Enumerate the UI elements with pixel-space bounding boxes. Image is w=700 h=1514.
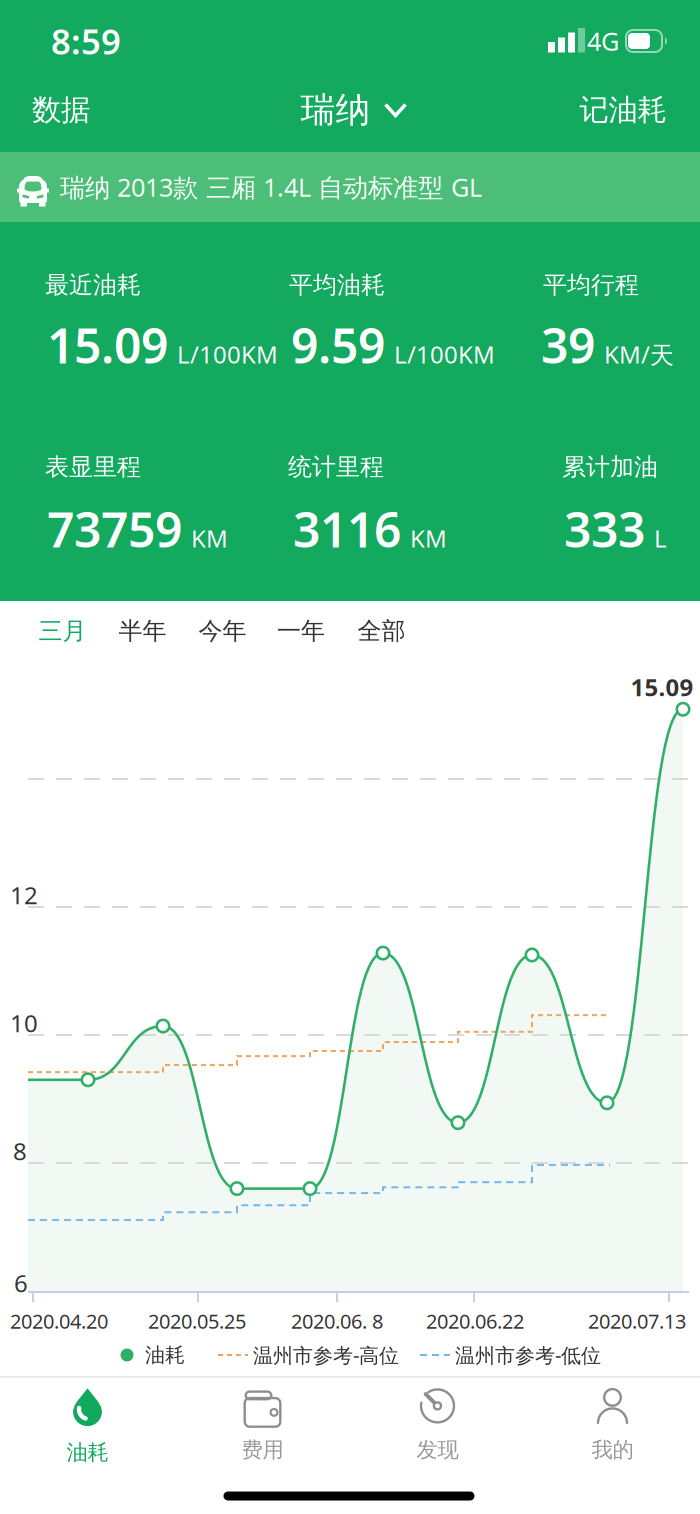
staticText: 全部 (357, 616, 405, 646)
button[interactable]: 今年 (198, 616, 246, 646)
staticText: 半年 (118, 616, 166, 646)
button[interactable]: 一年 (277, 616, 325, 646)
staticText: 39 (541, 313, 595, 377)
button[interactable]: 半年 (118, 616, 166, 646)
staticText: 2020.07.13 (588, 1308, 686, 1334)
staticText: 记油耗 (579, 92, 666, 128)
staticText: 温州市参考-低位 (455, 1342, 601, 1368)
button[interactable]: 数据 (32, 92, 90, 128)
staticText: 今年 (198, 616, 246, 646)
staticText: 2020.04.20 (10, 1308, 108, 1334)
staticText: 发现 (416, 1437, 458, 1463)
button[interactable]: 费用 (182, 1377, 342, 1473)
staticText: 最近油耗 (45, 270, 141, 300)
staticText: 4G (587, 24, 619, 58)
staticText: 10 (10, 1007, 38, 1039)
staticText: 数据 (32, 92, 90, 128)
staticText: 3116 (293, 497, 401, 561)
staticText: 三月 (38, 616, 86, 646)
staticText: 我的 (591, 1437, 633, 1463)
button[interactable]: 记油耗 (579, 92, 666, 128)
staticText: 2020.05.25 (148, 1308, 246, 1334)
staticText: 8:59 (51, 18, 121, 64)
staticText: 6 (14, 1267, 28, 1299)
staticText: KM (410, 522, 447, 554)
staticText: KM/天 (604, 338, 674, 370)
button[interactable]: 发现 (357, 1377, 517, 1473)
staticText: 73759 (47, 497, 182, 561)
button[interactable]: 瑞纳 (300, 89, 405, 131)
staticText: L/100KM (177, 338, 278, 370)
staticText: 2020.06.22 (426, 1308, 524, 1334)
staticText: 温州市参考-高位 (253, 1342, 399, 1368)
staticText: 瑞纳 2013款 三厢 1.4L 自动标准型 GL (60, 170, 482, 204)
staticText: 333 (564, 497, 645, 561)
staticText: 油耗 (145, 1343, 185, 1367)
staticText: 瑞纳 (300, 89, 370, 131)
staticText: 平均油耗 (289, 270, 385, 300)
staticText: 油耗 (66, 1439, 108, 1466)
staticText: 15.09 (47, 313, 168, 377)
button[interactable]: 三月 (38, 616, 86, 646)
staticText: L (654, 522, 667, 554)
staticText: 费用 (241, 1437, 283, 1463)
staticText: 表显里程 (45, 452, 141, 482)
button[interactable]: 瑞纳 2013款 三厢 1.4L 自动标准型 GL (0, 152, 700, 222)
staticText: 9.59 (291, 313, 385, 377)
staticText: 2020.06. 8 (291, 1308, 383, 1334)
staticText: L/100KM (394, 338, 495, 370)
staticText: 8 (13, 1135, 27, 1167)
staticText: 平均行程 (543, 270, 639, 300)
button[interactable]: 油耗 (7, 1379, 167, 1475)
staticText: 一年 (277, 616, 325, 646)
staticText: 15.09 (630, 671, 693, 703)
staticText: KM (191, 522, 228, 554)
button[interactable]: 我的 (532, 1377, 692, 1473)
staticText: 12 (10, 879, 38, 911)
staticText: 累计加油 (562, 452, 658, 482)
staticText: 统计里程 (288, 452, 384, 482)
button[interactable]: 全部 (357, 616, 405, 646)
